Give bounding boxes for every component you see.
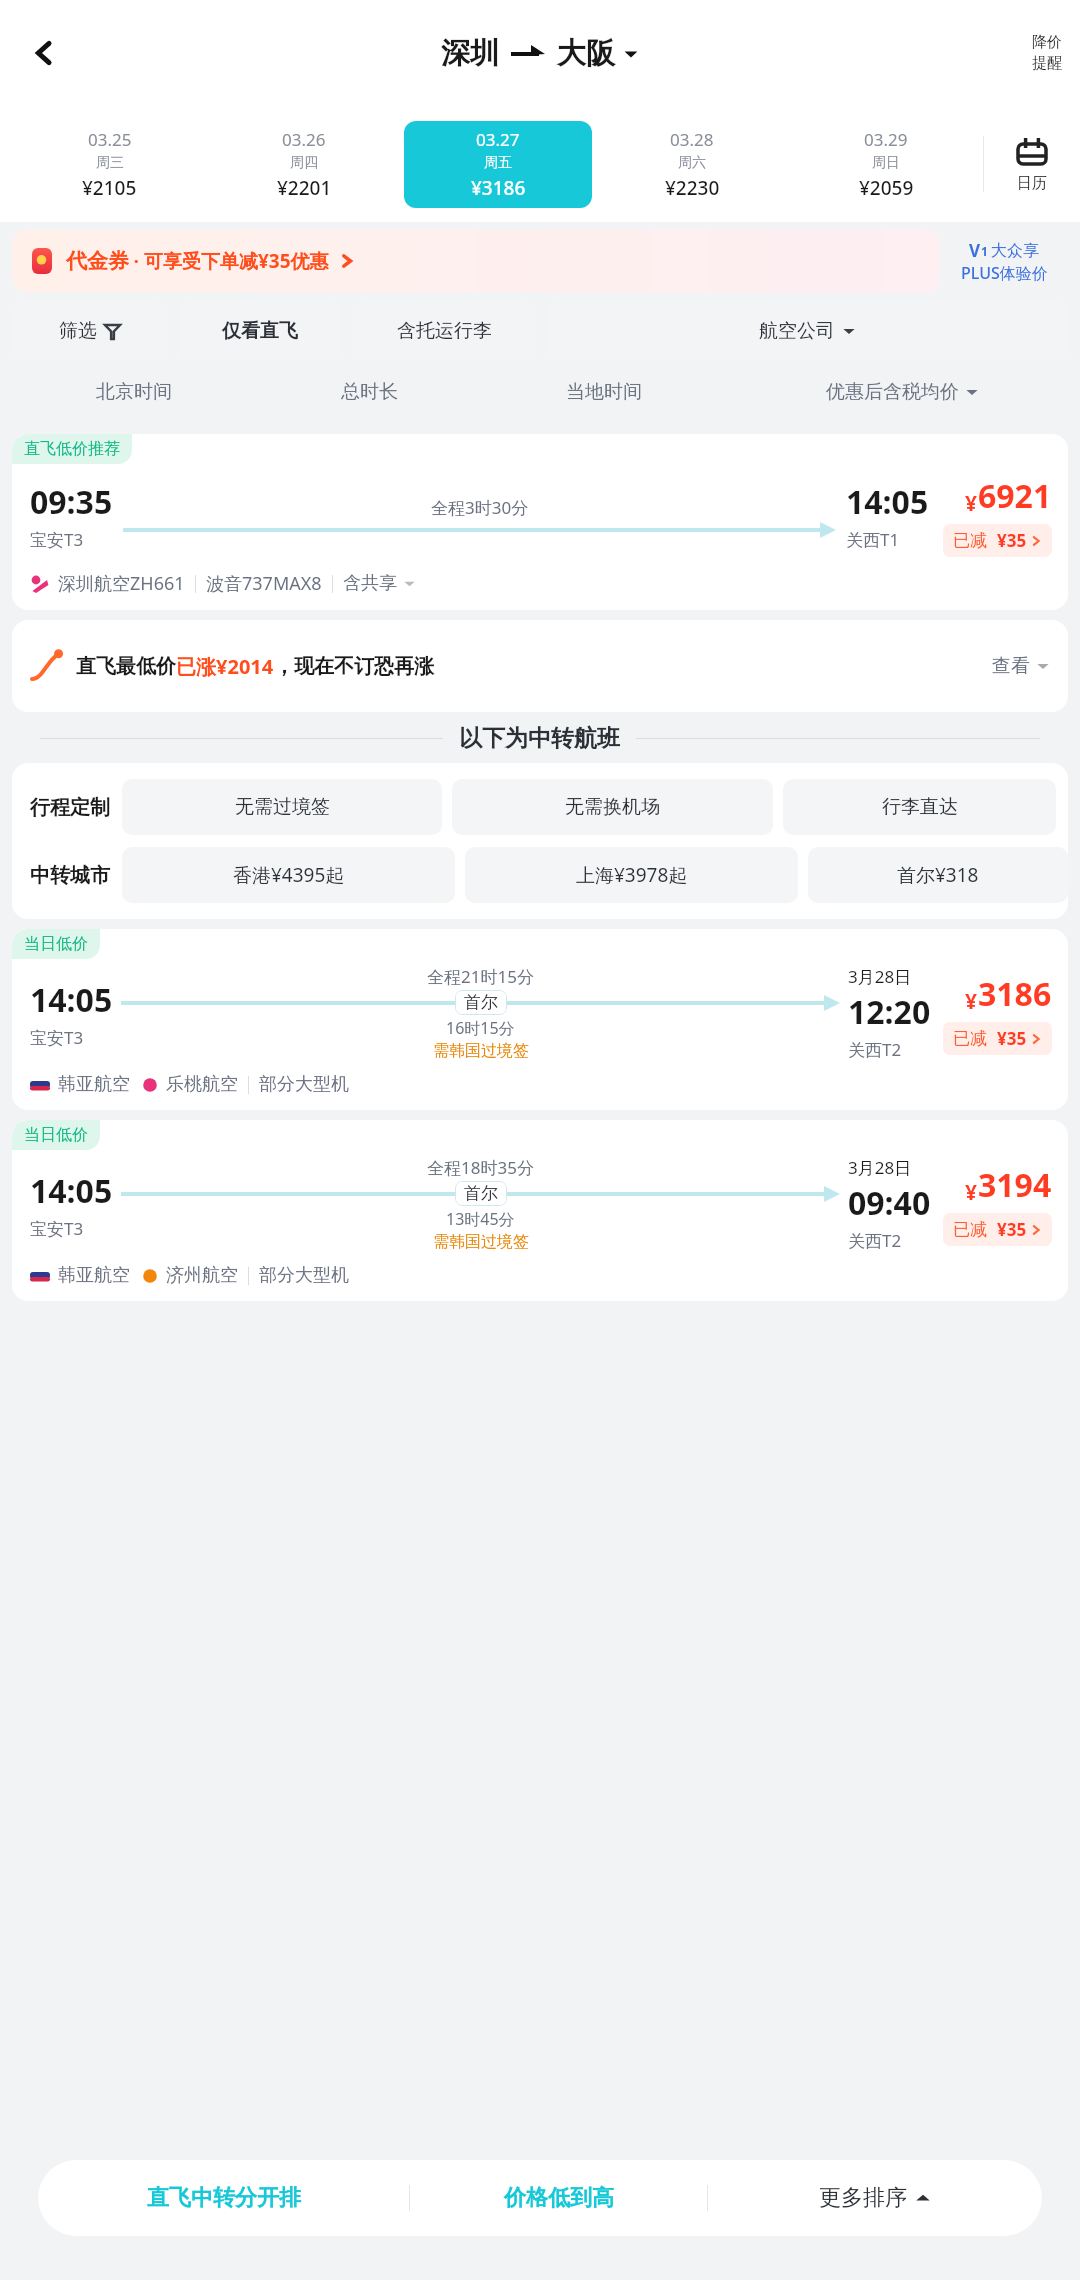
staticText: 需韩国过境签 bbox=[433, 1232, 529, 1252]
staticText: 已减 bbox=[953, 1028, 987, 1049]
button[interactable]: 03.28 bbox=[598, 121, 786, 208]
staticText: 筛选 bbox=[59, 319, 97, 343]
button[interactable]: 上海¥3978起 bbox=[465, 847, 798, 903]
staticText: 提醒 bbox=[1032, 54, 1062, 73]
staticText: 13时45分 bbox=[446, 1208, 515, 1230]
staticText: ¥3186 bbox=[471, 175, 526, 201]
button[interactable]: 日历 bbox=[984, 136, 1080, 193]
staticText: 代金券 bbox=[66, 248, 129, 274]
button[interactable]: 北京时间 bbox=[6, 360, 261, 424]
staticText: 优惠后含税均价 bbox=[826, 380, 959, 404]
staticText: 首尔¥318 bbox=[897, 862, 979, 888]
staticText: 总时长 bbox=[341, 380, 398, 404]
staticText: ¥ bbox=[965, 1178, 978, 1207]
staticText: 关西T2 bbox=[848, 1038, 902, 1061]
button[interactable]: 直飞最低价 bbox=[12, 620, 1068, 712]
staticText: 部分大型机 bbox=[259, 1073, 349, 1096]
button[interactable]: 无需换机场 bbox=[452, 779, 773, 835]
staticText: 宝安T3 bbox=[30, 1026, 84, 1049]
staticText: 行李直达 bbox=[882, 795, 958, 819]
button[interactable]: 当日低价 bbox=[12, 929, 1068, 1110]
staticText: 宝安T3 bbox=[30, 528, 84, 551]
staticText: ¥2230 bbox=[665, 175, 720, 201]
staticText: 14:05 bbox=[30, 978, 113, 1022]
staticText: 14:05 bbox=[846, 480, 929, 524]
button[interactable]: 无需过境签 bbox=[122, 779, 442, 835]
staticText: ，现在不订恐再涨 bbox=[274, 654, 434, 679]
staticText: 3186 bbox=[978, 972, 1052, 1016]
button[interactable]: 深圳 bbox=[441, 35, 639, 72]
staticText: 以下为中转航班 bbox=[459, 724, 620, 753]
staticText: 03.27 bbox=[476, 128, 520, 151]
staticText: V bbox=[969, 239, 981, 262]
button[interactable]: 优惠后含税均价 bbox=[731, 360, 1074, 424]
staticText: 已减 bbox=[953, 1219, 987, 1240]
button[interactable]: 已减 bbox=[943, 1213, 1052, 1246]
staticText: 部分大型机 bbox=[259, 1264, 349, 1287]
button[interactable]: 筛选 bbox=[12, 302, 168, 360]
staticText: 3月28日 bbox=[848, 1156, 912, 1179]
staticText: 行程定制 bbox=[30, 795, 110, 820]
button[interactable]: 直飞中转分开排 bbox=[38, 2160, 409, 2236]
staticText: 中转城市 bbox=[30, 863, 110, 888]
button[interactable]: 价格低到高 bbox=[410, 2160, 707, 2236]
staticText: 6921 bbox=[978, 474, 1052, 518]
button[interactable]: 直飞低价推荐 bbox=[12, 434, 1068, 610]
staticText: 12:20 bbox=[848, 990, 931, 1034]
staticText: 03.26 bbox=[282, 128, 326, 151]
staticText: 含托运行李 bbox=[397, 319, 492, 343]
button[interactable]: 更多排序 bbox=[708, 2160, 1042, 2236]
staticText: 当日低价 bbox=[24, 1125, 88, 1145]
button[interactable]: 代金券 bbox=[12, 230, 940, 292]
staticText: 周四 bbox=[290, 154, 318, 172]
staticText: 需韩国过境签 bbox=[433, 1041, 529, 1061]
button[interactable]: 降价 bbox=[1032, 33, 1062, 73]
button[interactable]: 当地时间 bbox=[477, 360, 731, 424]
staticText: 仅看直飞 bbox=[222, 319, 298, 343]
staticText: 乐桃航空 bbox=[166, 1073, 238, 1096]
staticText: 03.25 bbox=[88, 128, 132, 151]
staticText: ¥35 bbox=[997, 1027, 1027, 1050]
button[interactable]: Back bbox=[14, 23, 74, 83]
staticText: 韩亚航空 bbox=[58, 1264, 130, 1287]
button[interactable]: 03.27 bbox=[404, 121, 592, 208]
button[interactable]: 首尔¥318 bbox=[808, 847, 1068, 903]
button[interactable]: 当日低价 bbox=[12, 1120, 1068, 1301]
staticText: 16时15分 bbox=[446, 1017, 515, 1039]
button[interactable]: V bbox=[940, 239, 1068, 284]
staticText: ¥2105 bbox=[82, 175, 137, 201]
button[interactable]: 总时长 bbox=[261, 360, 477, 424]
button[interactable]: 行李直达 bbox=[783, 779, 1056, 835]
staticText: 1 bbox=[981, 243, 991, 259]
staticText: 直飞低价推荐 bbox=[24, 439, 120, 459]
staticText: 周五 bbox=[484, 154, 512, 172]
staticText: 深圳 bbox=[441, 35, 499, 72]
staticText: 当日低价 bbox=[24, 934, 88, 954]
button[interactable]: 仅看直飞 bbox=[178, 302, 342, 360]
button[interactable]: 已减 bbox=[943, 524, 1052, 557]
staticText: 可享受下单减¥35优惠 bbox=[144, 248, 329, 274]
staticText: 波音737MAX8 bbox=[206, 571, 322, 596]
staticText: 3月28日 bbox=[848, 965, 912, 988]
staticText: 香港¥4395起 bbox=[233, 862, 345, 888]
staticText: 直飞中转分开排 bbox=[147, 2184, 301, 2212]
staticText: 大众享 bbox=[991, 241, 1039, 261]
staticText: 全程21时15分 bbox=[427, 965, 534, 988]
staticText: 降价 bbox=[1032, 33, 1062, 52]
staticText: 首尔 bbox=[464, 1183, 498, 1204]
button[interactable]: 香港¥4395起 bbox=[122, 847, 455, 903]
button[interactable]: 已减 bbox=[943, 1022, 1052, 1055]
staticText: 价格低到高 bbox=[504, 2184, 614, 2212]
button[interactable]: 含托运行李 bbox=[352, 302, 536, 360]
staticText: 大阪 bbox=[557, 35, 615, 72]
button[interactable]: 03.26 bbox=[210, 121, 398, 208]
staticText: 航空公司 bbox=[759, 319, 835, 343]
button[interactable]: 航空公司 bbox=[546, 302, 1068, 360]
staticText: 韩亚航空 bbox=[58, 1073, 130, 1096]
staticText: 09:35 bbox=[30, 480, 113, 524]
staticText: ¥35 bbox=[997, 1218, 1027, 1241]
staticText: 全程3时30分 bbox=[431, 496, 529, 519]
button[interactable]: 03.25 bbox=[15, 121, 204, 208]
staticText: 首尔 bbox=[464, 992, 498, 1013]
button[interactable]: 03.29 bbox=[792, 121, 980, 208]
